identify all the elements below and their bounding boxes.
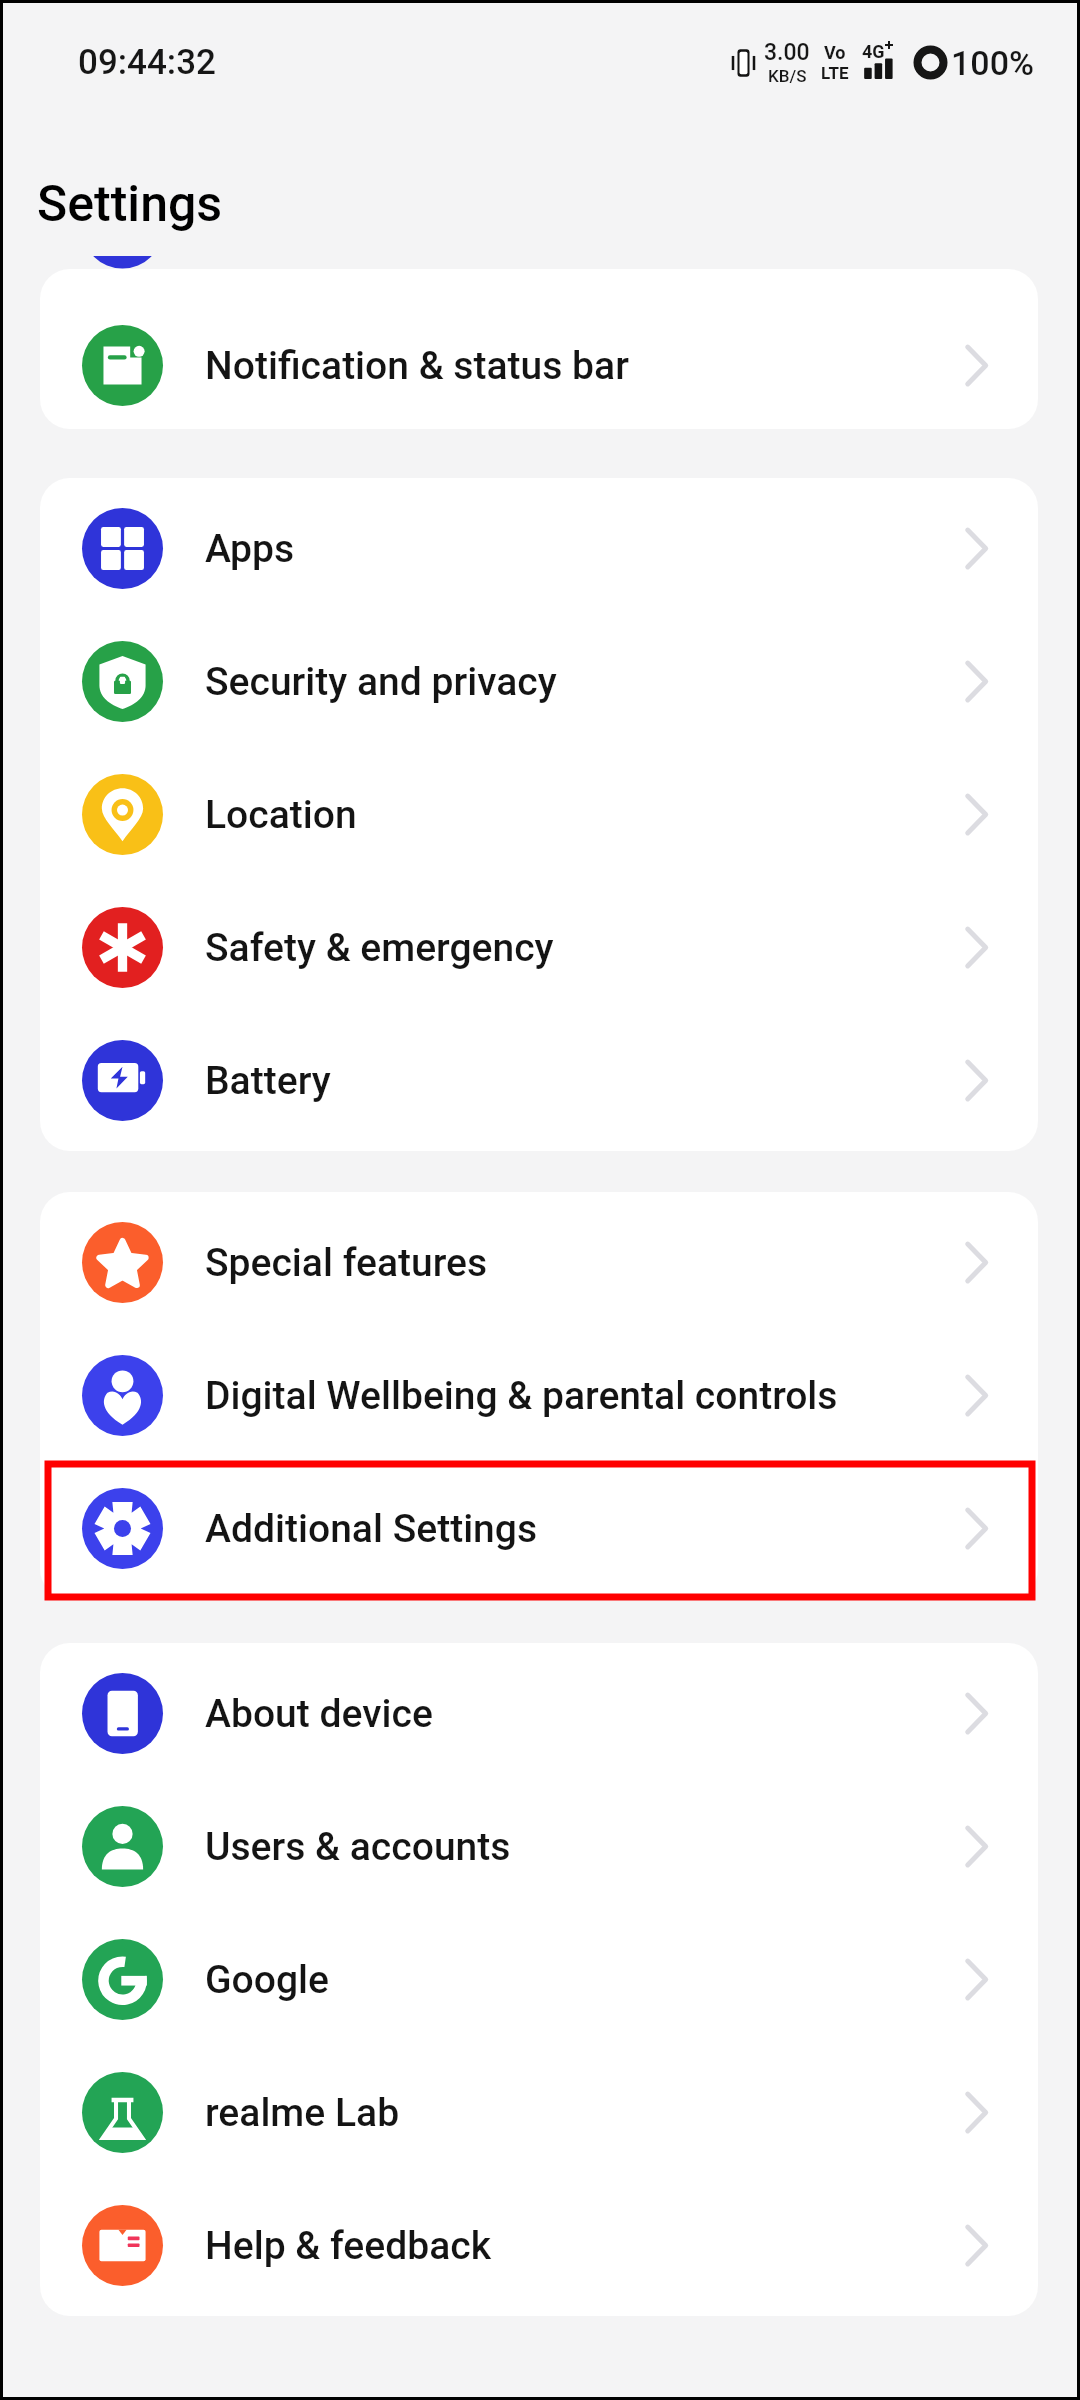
- staticText: 3.00: [764, 39, 810, 66]
- staticText: 4G: [862, 41, 885, 62]
- staticText: Special features: [205, 1240, 966, 1286]
- staticText: realme Lab: [205, 2090, 966, 2136]
- button[interactable]: Battery: [40, 1014, 1038, 1147]
- staticText: Digital Wellbeing & parental controls: [205, 1373, 966, 1419]
- button[interactable]: Help & feedback: [40, 2179, 1038, 2312]
- button[interactable]: Additional Settings: [40, 1462, 1038, 1595]
- other: Mobile signal: [862, 46, 898, 79]
- other: Battery: [913, 45, 948, 80]
- other: Vibrate mode: [731, 47, 756, 79]
- staticText: Additional Settings: [205, 1506, 966, 1552]
- staticText: Vo: [824, 42, 846, 63]
- button[interactable]: Notification & status bar: [40, 299, 1038, 429]
- staticText: Battery: [205, 1058, 966, 1104]
- button[interactable]: Safety & emergency: [40, 881, 1038, 1014]
- staticText: 09:44:32: [78, 42, 216, 83]
- button[interactable]: About device: [40, 1647, 1038, 1780]
- staticText: Settings: [37, 175, 223, 234]
- staticText: Security and privacy: [205, 659, 966, 705]
- button[interactable]: Special features: [40, 1196, 1038, 1329]
- button[interactable]: Security and privacy: [40, 615, 1038, 748]
- staticText: About device: [205, 1691, 966, 1737]
- button[interactable]: Google: [40, 1913, 1038, 2046]
- staticText: KB/S: [768, 66, 807, 86]
- staticText: Users & accounts: [205, 1824, 966, 1870]
- button[interactable]: Users & accounts: [40, 1780, 1038, 1913]
- staticText: Notification & status bar: [205, 343, 966, 389]
- staticText: 100%: [951, 43, 1034, 83]
- button[interactable]: Digital Wellbeing & parental controls: [40, 1329, 1038, 1462]
- staticText: Safety & emergency: [205, 925, 966, 971]
- button[interactable]: realme Lab: [40, 2046, 1038, 2179]
- staticText: Apps: [205, 526, 966, 572]
- staticText: Google: [205, 1957, 966, 2003]
- button[interactable]: Location: [40, 748, 1038, 881]
- staticText: LTE: [821, 63, 849, 83]
- staticText: Help & feedback: [205, 2223, 966, 2269]
- staticText: Location: [205, 792, 966, 838]
- button[interactable]: Apps: [40, 482, 1038, 615]
